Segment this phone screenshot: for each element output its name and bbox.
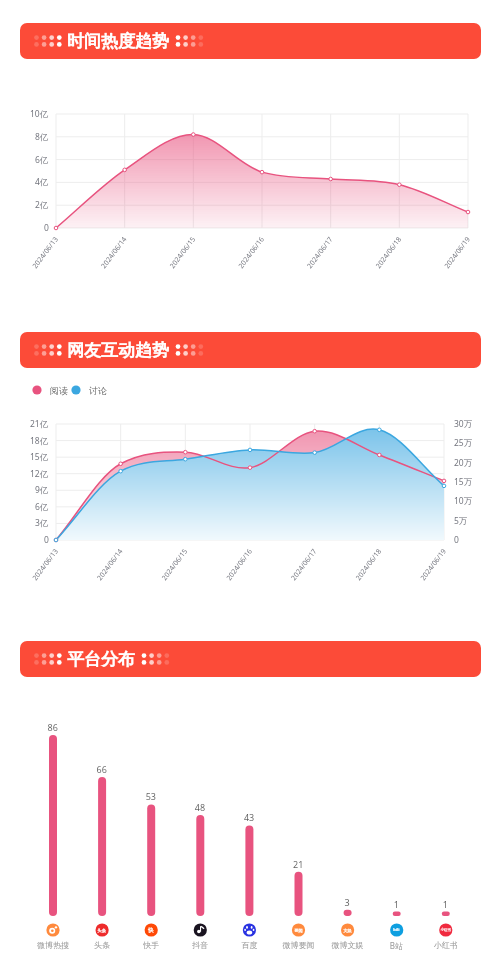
button[interactable] [0, 0, 500, 967]
